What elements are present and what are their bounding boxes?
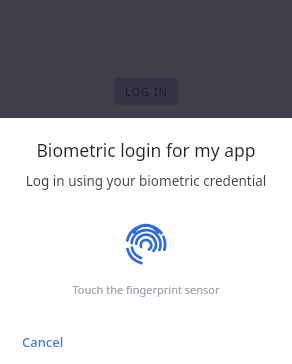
- staticText: Touch the fingerprint sensor: [12, 282, 280, 297]
- staticText: LOG IN: [125, 84, 168, 99]
- staticText: Log in using your biometric credential: [12, 172, 280, 190]
- staticText: Cancel: [22, 333, 64, 351]
- other: Fingerprint sensor: [125, 221, 167, 263]
- button[interactable]: Cancel: [14, 327, 72, 357]
- button[interactable]: LOG IN: [114, 78, 178, 105]
- staticText: Biometric login for my app: [18, 138, 274, 162]
